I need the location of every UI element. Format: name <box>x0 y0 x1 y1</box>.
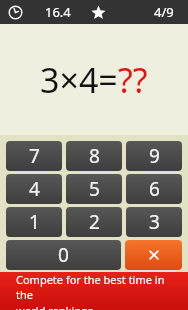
button[interactable]: 8 <box>66 141 122 171</box>
button[interactable]: Timer <box>8 5 23 20</box>
button[interactable]: 9 <box>126 141 182 171</box>
button[interactable]: Clear <box>125 240 182 270</box>
staticText: 0 <box>58 242 69 268</box>
staticText: Compete for the best time in the <box>16 272 182 302</box>
staticText: 16.4 <box>45 3 71 21</box>
staticText: 3 <box>149 209 160 235</box>
button[interactable]: 0 <box>6 240 121 270</box>
button[interactable]: 4 <box>6 174 62 204</box>
staticText: world rankings. <box>16 303 97 310</box>
staticText: 1 <box>29 209 40 235</box>
staticText: 8 <box>89 143 100 169</box>
staticText: 3×4= <box>40 57 118 103</box>
button[interactable]: 6 <box>126 174 182 204</box>
staticText: 4 <box>29 176 40 202</box>
button[interactable]: Score <box>91 5 106 20</box>
button[interactable]: Compete for the best time in the <box>0 272 188 310</box>
staticText: 4/9 <box>154 3 174 21</box>
button[interactable]: 7 <box>6 141 62 171</box>
staticText: ?? <box>118 57 148 103</box>
staticText: 5 <box>89 176 100 202</box>
staticText: 7 <box>29 143 40 169</box>
button[interactable]: 1 <box>6 207 62 237</box>
button[interactable]: 2 <box>66 207 122 237</box>
button[interactable]: 3 <box>126 207 182 237</box>
button[interactable]: 5 <box>66 174 122 204</box>
staticText: 2 <box>89 209 100 235</box>
staticText: 9 <box>149 143 160 169</box>
staticText: 6 <box>149 176 160 202</box>
